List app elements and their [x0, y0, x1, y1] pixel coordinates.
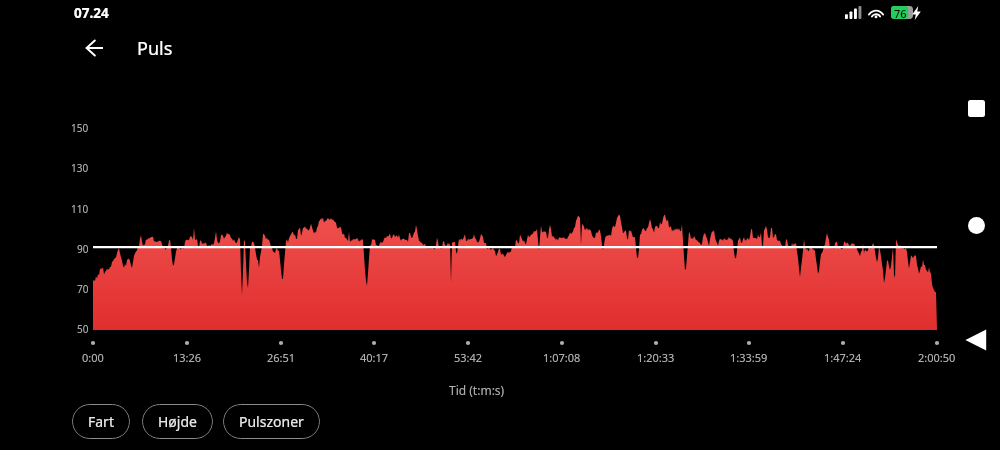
staticText: 1:47:24	[824, 350, 862, 365]
staticText: 1:20:33	[637, 350, 675, 365]
staticText: Tid (t:m:s)	[449, 382, 505, 398]
staticText: 130	[71, 161, 89, 175]
staticText: 13:26	[173, 350, 202, 365]
staticText: 07.24	[74, 4, 109, 22]
staticText: 40:17	[360, 350, 389, 365]
staticText: 90	[77, 242, 89, 256]
staticText: 0:00	[82, 350, 104, 365]
staticText: 53:42	[454, 350, 483, 365]
staticText: Højde	[158, 412, 197, 431]
staticText: 2:00:50	[918, 350, 956, 365]
button[interactable]: Hjem	[960, 209, 992, 241]
button[interactable]: Tilbage	[960, 324, 992, 356]
button[interactable]: Seneste apps	[960, 92, 992, 124]
staticText: 70	[77, 282, 89, 296]
staticText: 1:07:08	[543, 350, 581, 365]
button[interactable]: Fart	[72, 404, 130, 439]
button[interactable]: Højde	[142, 404, 213, 439]
staticText: 76	[894, 6, 907, 21]
staticText: 50	[77, 322, 89, 336]
staticText: 150	[71, 121, 89, 135]
staticText: Pulszoner	[239, 412, 304, 431]
staticText: Fart	[88, 412, 114, 431]
staticText: 110	[71, 202, 89, 216]
staticText: Puls	[137, 36, 173, 61]
staticText: 26:51	[267, 350, 296, 365]
staticText: 1:33:59	[730, 350, 768, 365]
button[interactable]: Pulszoner	[223, 404, 320, 439]
button[interactable]: Tilbage	[72, 26, 116, 70]
